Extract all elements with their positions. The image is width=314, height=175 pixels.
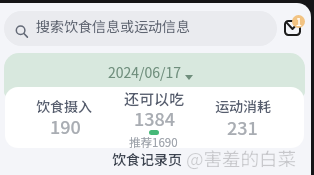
staticText: 231 [227, 114, 258, 140]
staticText: 还可以吃 [124, 88, 185, 110]
staticText: 1 [296, 14, 302, 28]
staticText: 饮食摄入 [36, 96, 92, 116]
button[interactable]: Messages [281, 16, 308, 43]
staticText: @害羞的白菜 [186, 145, 297, 172]
staticText: 推荐1690 [129, 134, 178, 151]
staticText: 2024/06/17 [108, 62, 182, 82]
staticText: 1384 [134, 105, 176, 131]
button[interactable] [5, 87, 304, 148]
button[interactable] [4, 11, 277, 46]
staticText: 饮食记录页 [112, 149, 182, 169]
staticText: 运动消耗 [215, 96, 271, 116]
staticText: 190 [50, 113, 81, 139]
staticText: 搜索饮食信息或运动信息 [36, 16, 190, 36]
